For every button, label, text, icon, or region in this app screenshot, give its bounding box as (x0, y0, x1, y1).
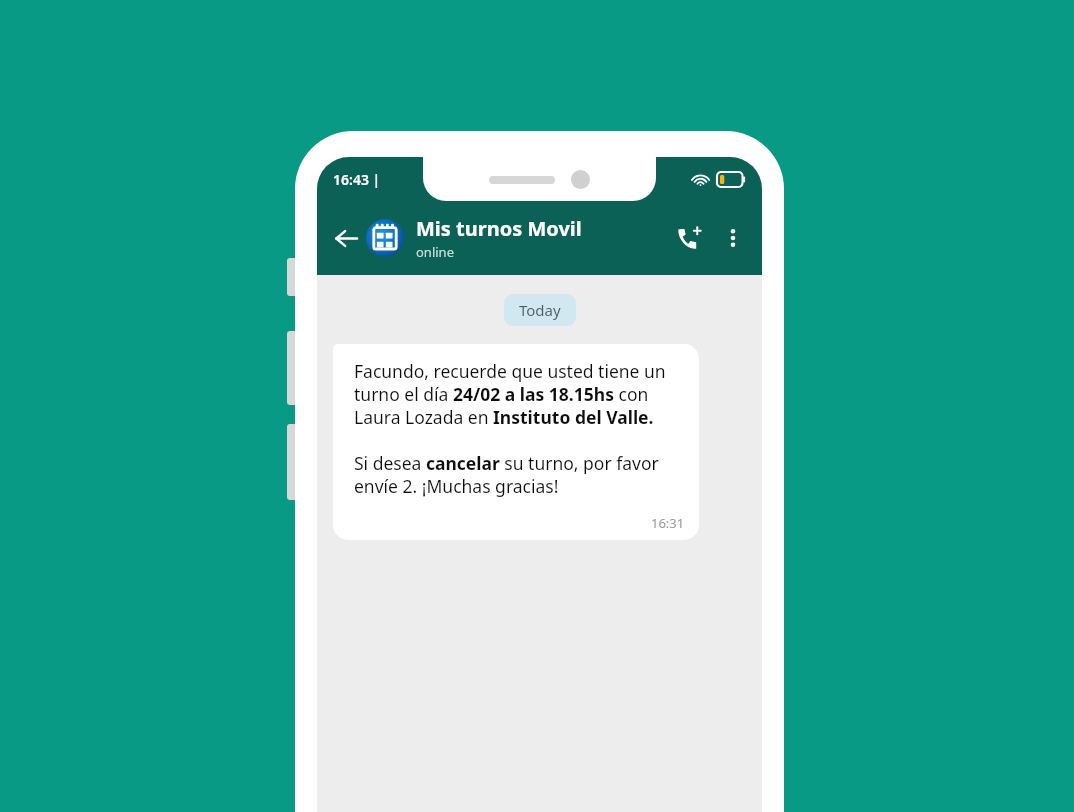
staticText: 16:43 | (333, 170, 381, 189)
button[interactable]: Video call (669, 218, 709, 258)
button[interactable]: Contact photo (366, 219, 404, 257)
button[interactable]: Mis turnos Movil (416, 215, 669, 261)
staticText: Today (519, 300, 561, 320)
staticText: online (416, 243, 454, 261)
button[interactable]: Today (504, 294, 576, 326)
button[interactable]: More options (717, 222, 749, 254)
staticText: Mis turnos Movil (416, 215, 582, 242)
staticText: 16:31 (651, 514, 685, 532)
button[interactable]: Facundo, recuerde que usted tiene un tur… (333, 344, 699, 540)
button[interactable]: Back (329, 221, 363, 255)
staticText: Facundo, recuerde que usted tiene un tur… (354, 359, 685, 498)
